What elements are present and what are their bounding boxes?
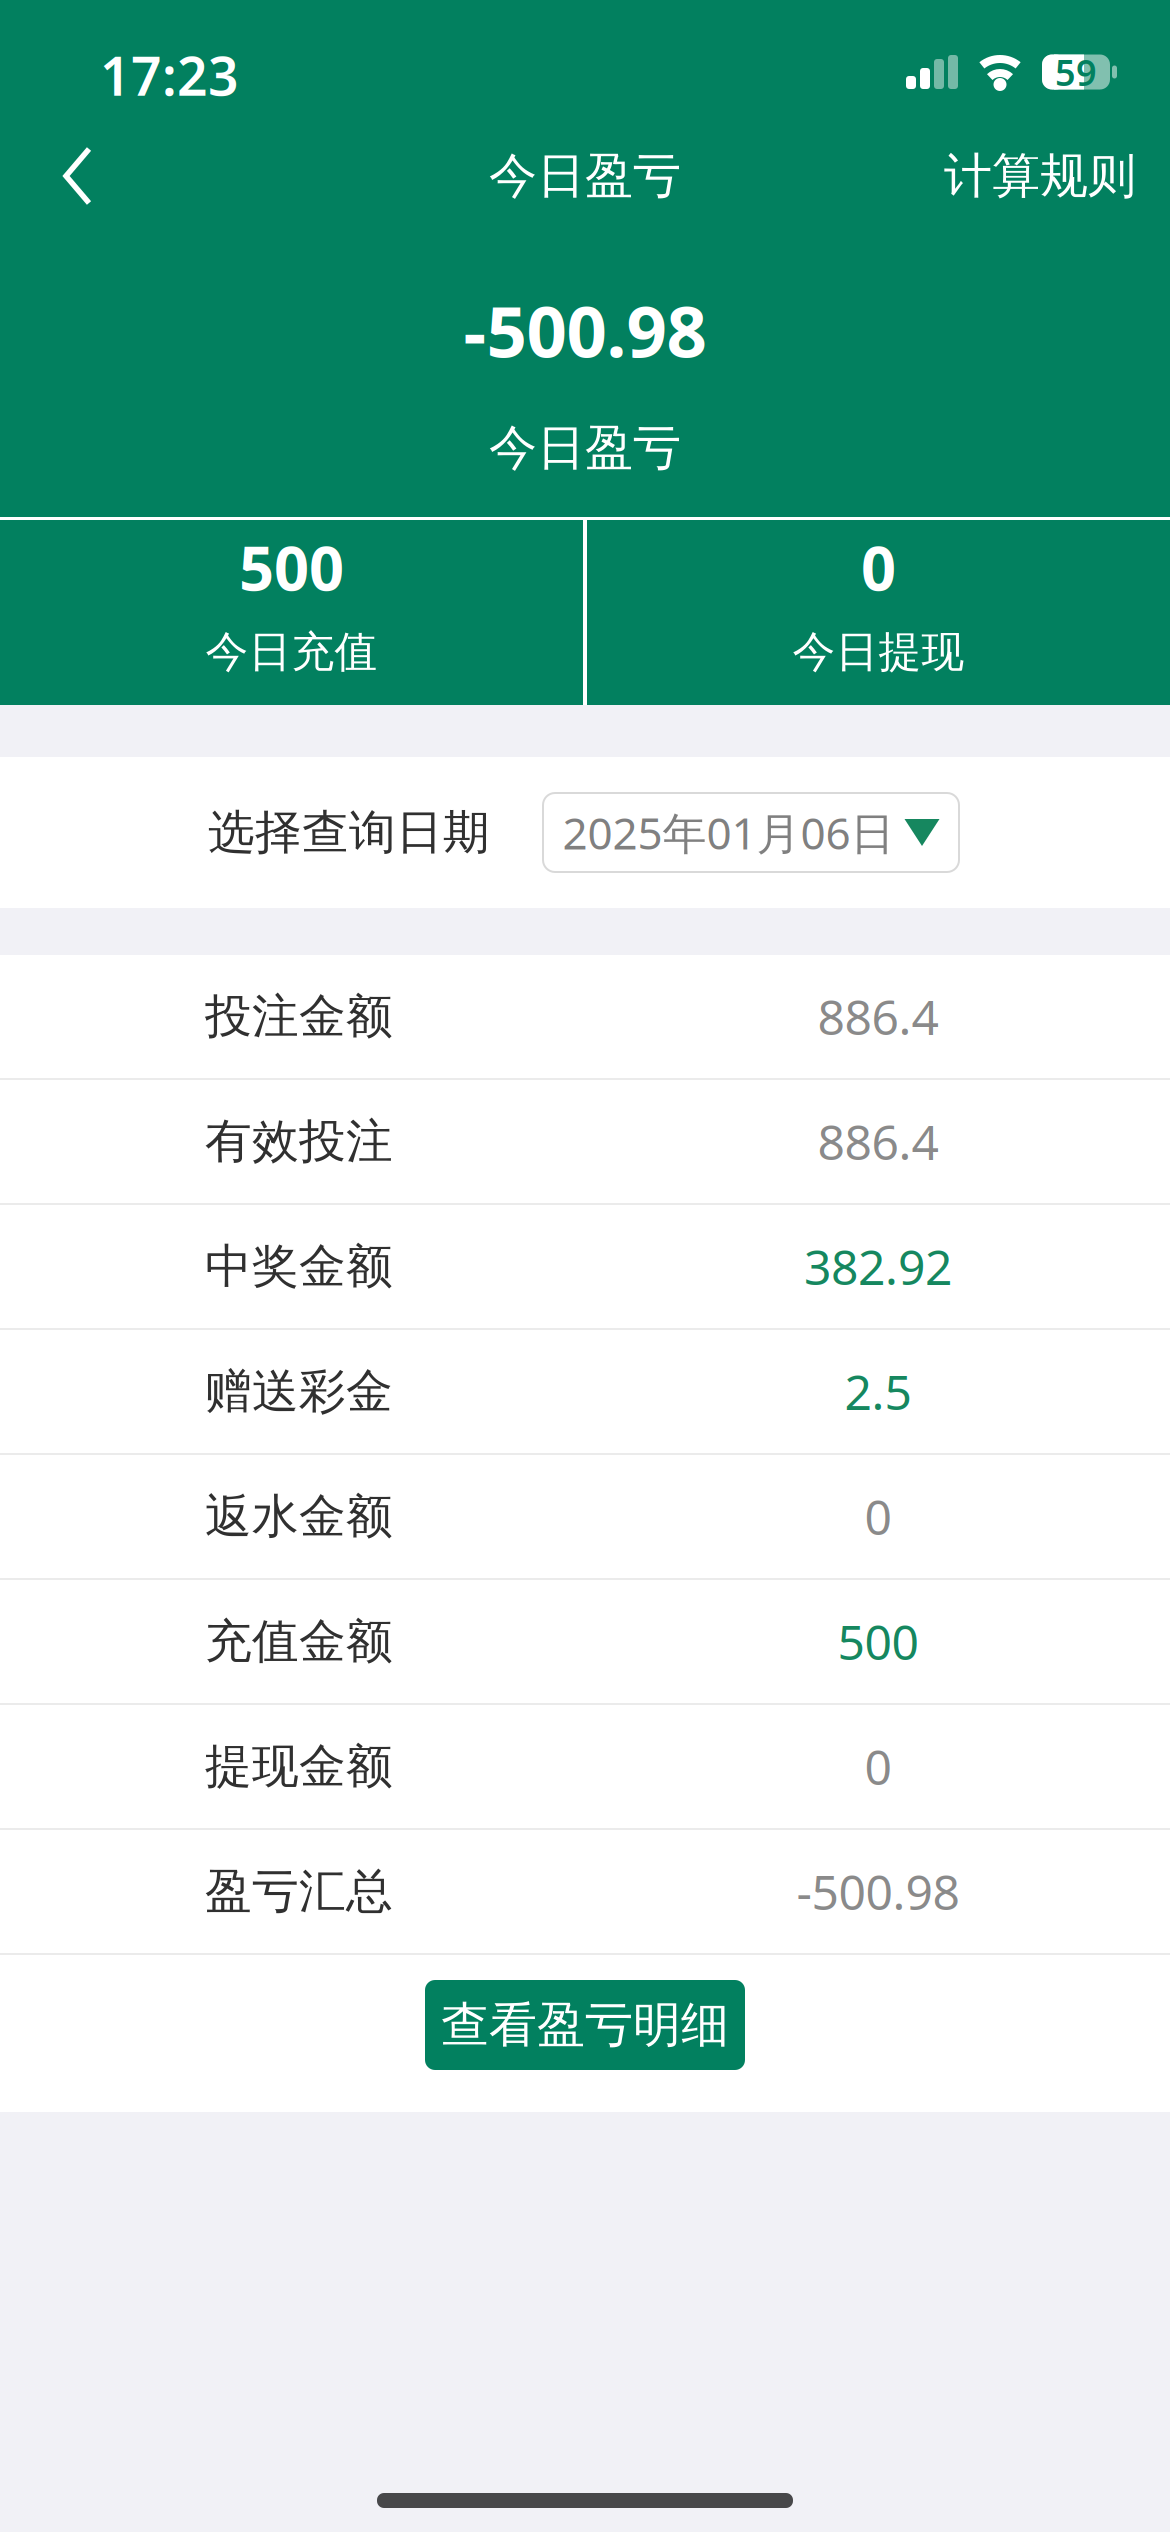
staticText: 886.4: [817, 985, 938, 1048]
staticText: 382.92: [804, 1235, 952, 1298]
staticText: 今日盈亏: [489, 418, 681, 477]
staticText: 选择查询日期: [208, 804, 490, 861]
staticText: 查看盈亏明细: [441, 1995, 729, 2054]
staticText: 886.4: [817, 1110, 938, 1173]
staticText: 今日盈亏: [489, 146, 681, 205]
staticText: 今日充值: [205, 626, 377, 678]
staticText: 0: [864, 1735, 891, 1798]
staticText: 2.5: [844, 1360, 911, 1423]
staticText: 17:23: [100, 40, 239, 110]
staticText: 中奖金额: [205, 1238, 393, 1295]
staticText: 计算规则: [944, 146, 1136, 205]
staticText: 投注金额: [205, 988, 393, 1045]
staticText: 返水金额: [205, 1488, 393, 1545]
button[interactable]: 查看盈亏明细: [425, 1980, 745, 2070]
staticText: 提现金额: [205, 1738, 393, 1795]
staticText: 2025年01月06日: [562, 803, 894, 862]
staticText: 有效投注: [205, 1113, 393, 1170]
staticText: -500.98: [463, 283, 706, 377]
staticText: 500: [837, 1610, 918, 1673]
staticText: 500: [239, 526, 344, 608]
staticText: 盈亏汇总: [205, 1863, 393, 1920]
staticText: 充值金额: [205, 1613, 393, 1670]
staticText: 赠送彩金: [205, 1363, 393, 1420]
button[interactable]: Back: [0, 146, 95, 206]
staticText: 0: [864, 1485, 891, 1548]
button[interactable]: 计算规则: [944, 146, 1170, 205]
button[interactable]: 2025年01月06日: [543, 793, 959, 872]
staticText: 59: [1055, 48, 1097, 96]
staticText: 今日提现: [792, 626, 964, 678]
staticText: -500.98: [796, 1860, 959, 1923]
staticText: 0: [861, 526, 896, 608]
